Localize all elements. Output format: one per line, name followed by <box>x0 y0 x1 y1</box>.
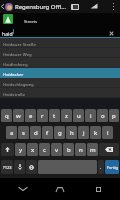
staticText: Haidhofweg <box>3 61 28 67</box>
staticText: k <box>94 129 98 137</box>
staticText: e <box>29 112 33 120</box>
staticText: g <box>58 129 62 137</box>
button[interactable]: q <box>1 109 12 122</box>
button[interactable]: o <box>97 109 108 122</box>
staticText: p <box>112 112 116 120</box>
button[interactable]: x <box>27 143 38 156</box>
button[interactable]: h <box>66 126 77 139</box>
staticText: Haidauer Weg <box>3 51 32 57</box>
staticText: y <box>19 146 23 154</box>
button[interactable]: c <box>39 143 50 156</box>
button[interactable]: Haidstraße <box>0 88 120 98</box>
staticText: a <box>10 129 14 137</box>
button[interactable]: Shift <box>1 143 14 156</box>
button[interactable]: Haidauer Weg <box>0 48 120 58</box>
staticText: r <box>41 112 44 120</box>
button[interactable]: Haidacker <box>0 68 120 78</box>
button[interactable]: k <box>90 126 101 139</box>
staticText: m <box>90 146 96 154</box>
staticText: Haidauer Straße <box>3 41 36 47</box>
staticText: d <box>34 129 38 137</box>
button[interactable]: Fertig <box>105 160 119 174</box>
button[interactable]: Haidhofweg <box>0 58 120 68</box>
button[interactable]: j <box>78 126 89 139</box>
button[interactable]: Back <box>8 178 38 200</box>
staticText: u <box>77 112 81 120</box>
button[interactable]: n <box>75 143 86 156</box>
button[interactable]: Streets <box>0 13 120 25</box>
staticText: z <box>65 112 68 120</box>
button[interactable]: Clear text <box>107 29 116 38</box>
staticText: h <box>70 129 74 137</box>
button[interactable]: a <box>6 126 17 139</box>
staticText: l <box>107 129 109 137</box>
staticText: ?123 <box>3 165 12 170</box>
staticText: t <box>53 112 56 120</box>
staticText: b <box>67 146 71 154</box>
button[interactable]: e <box>25 109 36 122</box>
button[interactable]: r <box>37 109 48 122</box>
button[interactable]: p <box>109 109 119 122</box>
staticText: i <box>90 112 92 120</box>
button[interactable]: i <box>85 109 96 122</box>
button[interactable]: More options <box>109 0 118 13</box>
staticText: n <box>79 146 83 154</box>
staticText: s <box>22 129 25 137</box>
button[interactable]: y <box>15 143 26 156</box>
button[interactable]: Backspace <box>99 143 119 156</box>
button[interactable]: Haidschlagweg <box>0 78 120 88</box>
button[interactable]: Haidauer Straße <box>0 38 120 48</box>
staticText: Streets <box>24 19 38 24</box>
staticText: Haidacker <box>3 71 24 77</box>
staticText: j <box>83 129 85 137</box>
button[interactable]: Navigate up <box>0 0 5 13</box>
staticText: haid <box>2 30 13 37</box>
staticText: Haidschlagweg <box>3 81 34 87</box>
button[interactable]: v <box>51 143 62 156</box>
button[interactable]: Recent apps <box>83 178 113 200</box>
staticText: f <box>46 129 49 137</box>
staticText: q <box>5 112 9 120</box>
staticText: v <box>55 146 59 154</box>
staticText: . <box>100 164 102 171</box>
staticText: Haidstraße <box>3 91 26 97</box>
button[interactable]: s <box>18 126 29 139</box>
button[interactable]: m <box>87 143 98 156</box>
button[interactable]: Voice input <box>14 160 25 174</box>
staticText: w <box>16 112 21 120</box>
button[interactable]: d <box>30 126 41 139</box>
button[interactable]: z <box>61 109 72 122</box>
button[interactable]: Home <box>45 178 75 200</box>
button[interactable]: w <box>13 109 24 122</box>
button[interactable]: t <box>49 109 60 122</box>
button[interactable]: u <box>73 109 84 122</box>
staticText: c <box>43 146 46 154</box>
staticText: o <box>101 112 105 120</box>
staticText: x <box>31 146 35 154</box>
button[interactable]: Change keyboard <box>26 160 37 174</box>
button[interactable]: . <box>98 160 104 174</box>
staticText: Fertig <box>107 165 118 170</box>
staticText: Regensburg Offlin… <box>15 3 67 11</box>
button[interactable]: b <box>63 143 74 156</box>
button[interactable]: g <box>54 126 65 139</box>
button[interactable]: ?123 <box>1 160 13 174</box>
button[interactable]: l <box>102 126 113 139</box>
button[interactable]: f <box>42 126 53 139</box>
